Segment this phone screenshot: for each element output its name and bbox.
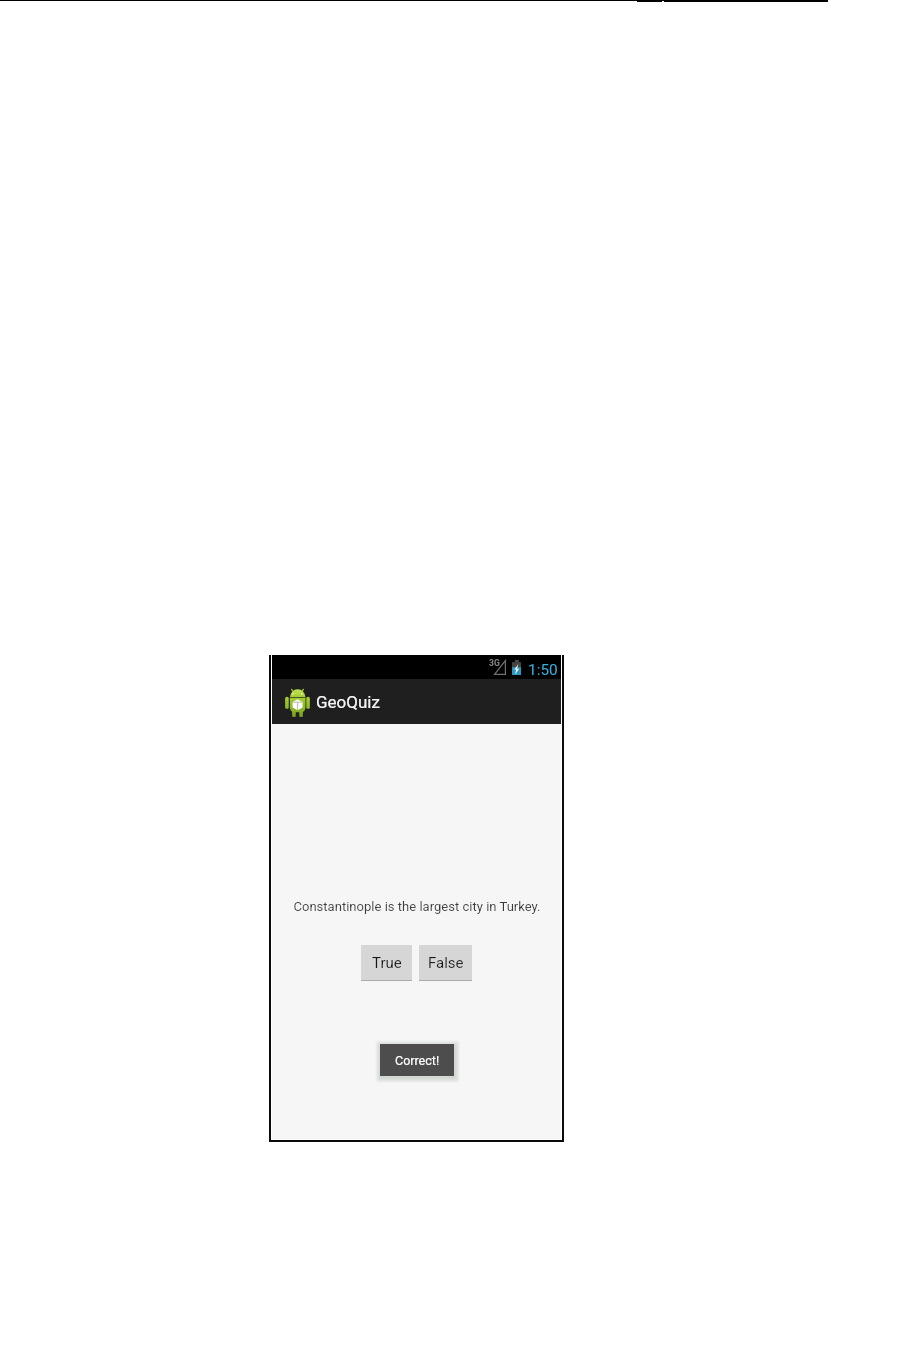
staticText: 3G (489, 658, 500, 668)
staticText: 1:50 (528, 661, 558, 679)
button[interactable]: True (361, 945, 412, 981)
button[interactable]: GeoQuiz, app bar (272, 679, 561, 724)
staticText: Constantinople is the largest city in Tu… (293, 899, 541, 914)
other: Battery charging (512, 660, 521, 675)
staticText: True (372, 954, 402, 972)
other: Mobile signal strength (494, 660, 506, 675)
staticText: GeoQuiz (316, 692, 380, 712)
button[interactable]: False (419, 945, 472, 981)
staticText: Correct! (395, 1053, 440, 1068)
staticText: False (428, 954, 464, 972)
